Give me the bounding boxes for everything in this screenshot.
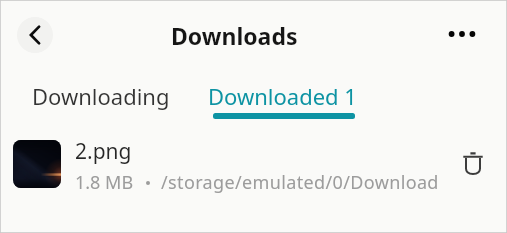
staticText: Downloaded 1 (208, 81, 357, 111)
button[interactable]: Back (17, 17, 53, 53)
button[interactable]: Downloading (20, 81, 182, 119)
button[interactable]: Downloaded 1 (197, 81, 367, 121)
button[interactable]: Delete (451, 142, 495, 186)
staticText: /storage/emulated/0/Download (161, 170, 439, 195)
staticText: Downloading (32, 81, 170, 111)
button[interactable]: More options (440, 12, 484, 56)
staticText: 1.8 MB (75, 170, 134, 195)
staticText: 2.png (75, 137, 132, 166)
button[interactable]: 2.png (0, 131, 507, 201)
staticText: Downloads (171, 20, 298, 51)
